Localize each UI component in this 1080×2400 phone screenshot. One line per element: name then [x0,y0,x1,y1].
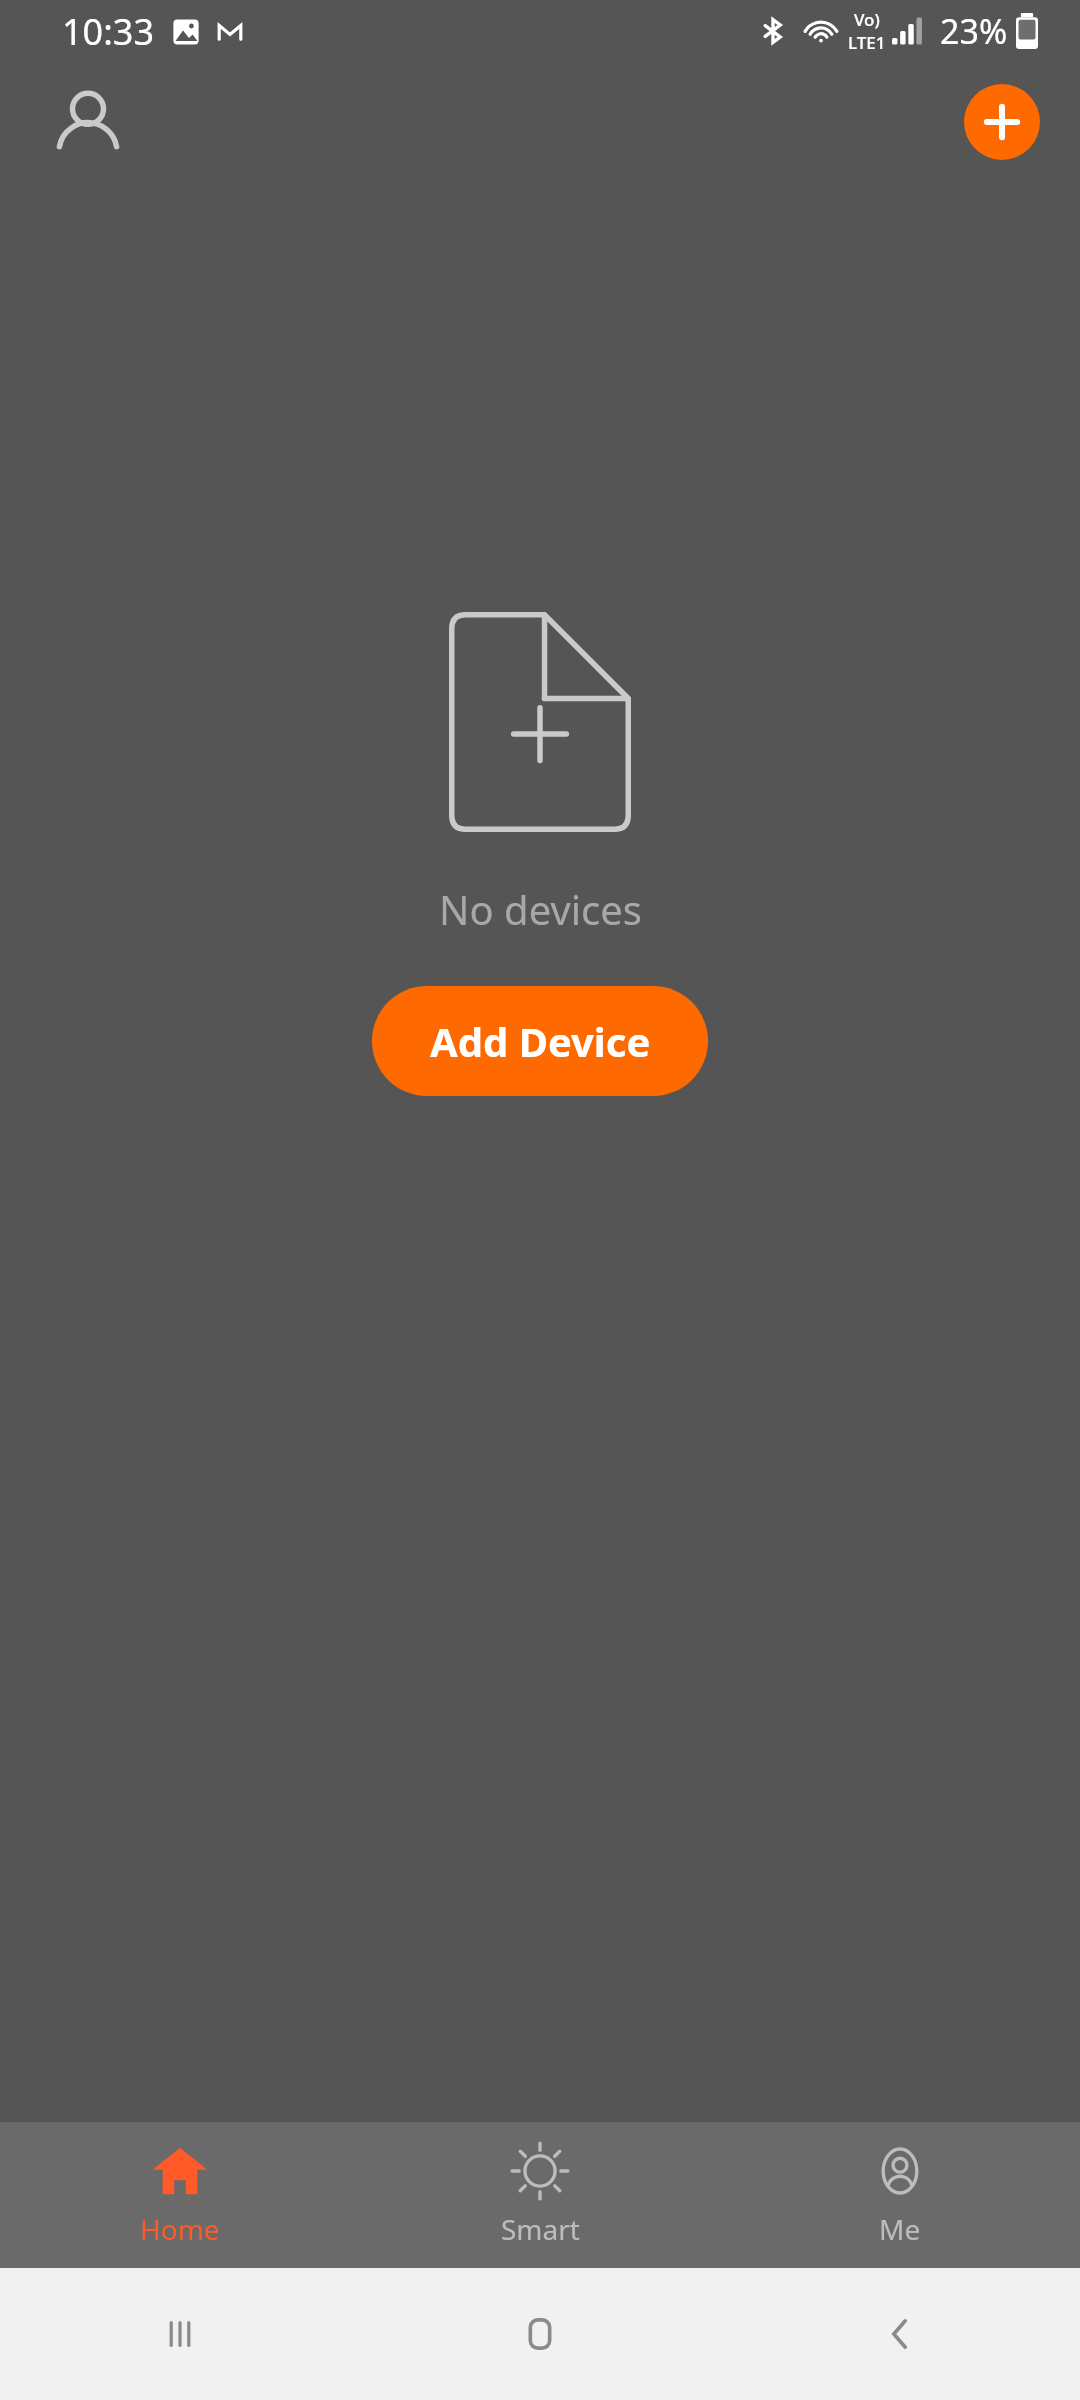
staticText: Home [140,2210,220,2248]
button[interactable]: Recents [0,2268,360,2400]
staticText: Smart [501,2210,580,2248]
button[interactable]: Add Device [372,986,708,1096]
button[interactable]: Home [360,2268,720,2400]
staticText: 23% [940,8,1008,54]
staticText: 10:33 [62,7,155,56]
button[interactable]: Home [0,2122,360,2268]
staticText: Vo) [854,8,880,31]
staticText: LTE1 [848,31,886,54]
staticText: No devices [439,882,642,936]
staticText: Me [879,2210,921,2248]
button[interactable]: Profile [40,74,136,170]
staticText: Add Device [430,1014,651,1068]
button[interactable]: Smart [360,2122,720,2268]
button[interactable]: Back [720,2268,1080,2400]
button[interactable]: Me [720,2122,1080,2268]
button[interactable]: Add [964,84,1040,160]
